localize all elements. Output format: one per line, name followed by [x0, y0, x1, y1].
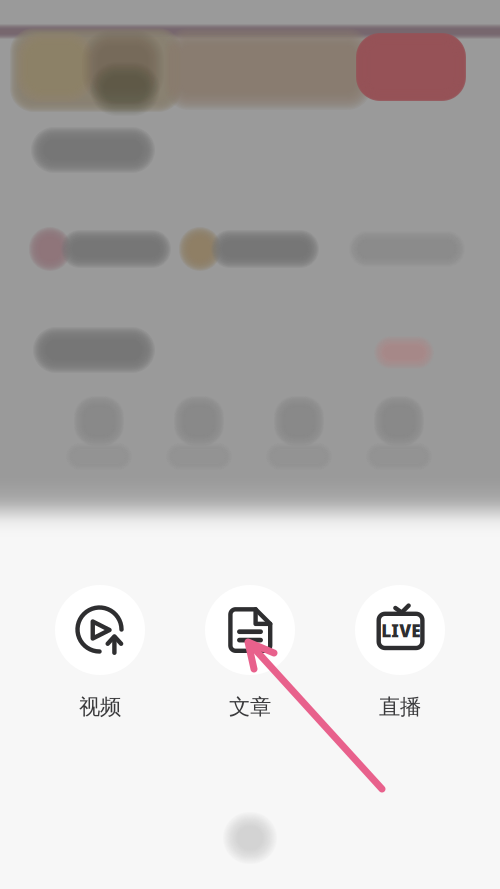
staticText: LIVE [381, 619, 421, 642]
staticText: 视频 [79, 694, 121, 720]
staticText: 直播 [379, 694, 421, 720]
button[interactable]: 视频 [25, 585, 175, 719]
button[interactable]: LIVE [325, 585, 475, 719]
button[interactable]: 文章 [175, 585, 325, 719]
staticText: 文章 [229, 694, 271, 720]
